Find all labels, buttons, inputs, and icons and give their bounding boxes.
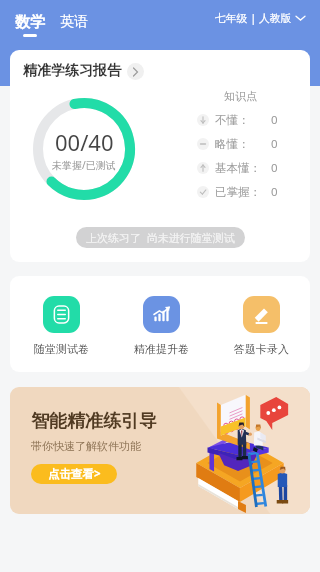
button[interactable]: 已掌握： xyxy=(197,180,278,204)
button[interactable]: 上次练习了 尚未进行随堂测试 xyxy=(76,227,245,248)
staticText: 智能精准练引导 xyxy=(31,410,157,433)
staticText: 0 xyxy=(271,184,278,200)
staticText: 未掌握/已测试 xyxy=(52,158,116,172)
staticText: 精准学练习报告 xyxy=(23,62,121,80)
staticText: 精准提升卷 xyxy=(134,342,189,356)
button[interactable]: 不懂： xyxy=(197,108,278,132)
staticText: 0 xyxy=(271,112,278,128)
button[interactable]: 数学 xyxy=(9,0,51,37)
staticText: 略懂： xyxy=(215,137,250,151)
staticText: 不懂： xyxy=(215,113,250,127)
staticText: 带你快速了解软件功能 xyxy=(31,439,141,453)
staticText: 点击查看> xyxy=(48,466,101,482)
staticText: 0 xyxy=(271,160,278,176)
staticText: 知识点 xyxy=(224,89,257,103)
staticText: 英语 xyxy=(60,13,88,31)
staticText: 已掌握： xyxy=(215,185,261,199)
button[interactable]: 精准学练习报告 xyxy=(10,50,310,262)
staticText: 数学 xyxy=(15,13,45,32)
staticText: 答题卡录入 xyxy=(234,342,289,356)
button[interactable]: 点击查看> xyxy=(31,464,117,484)
staticText: 00/40 xyxy=(55,127,114,157)
staticText: 随堂测试卷 xyxy=(34,342,89,356)
button[interactable]: 智能精准练引导 xyxy=(10,387,310,514)
button[interactable]: 精准提升卷 xyxy=(134,296,189,356)
button[interactable]: 基本懂： xyxy=(197,156,278,180)
button[interactable]: 随堂测试卷 xyxy=(34,296,89,356)
staticText: 基本懂： xyxy=(215,161,261,175)
staticText: 0 xyxy=(271,136,278,152)
button[interactable]: 查看报告详情 xyxy=(127,63,144,80)
button[interactable]: 答题卡录入 xyxy=(234,296,289,356)
button[interactable]: 七年级 | 人教版 xyxy=(207,0,312,33)
button[interactable]: 略懂： xyxy=(197,132,278,156)
staticText: 七年级 | 人教版 xyxy=(215,10,292,25)
staticText: 上次练习了 尚未进行随堂测试 xyxy=(86,230,235,245)
button[interactable]: 英语 xyxy=(54,0,94,36)
